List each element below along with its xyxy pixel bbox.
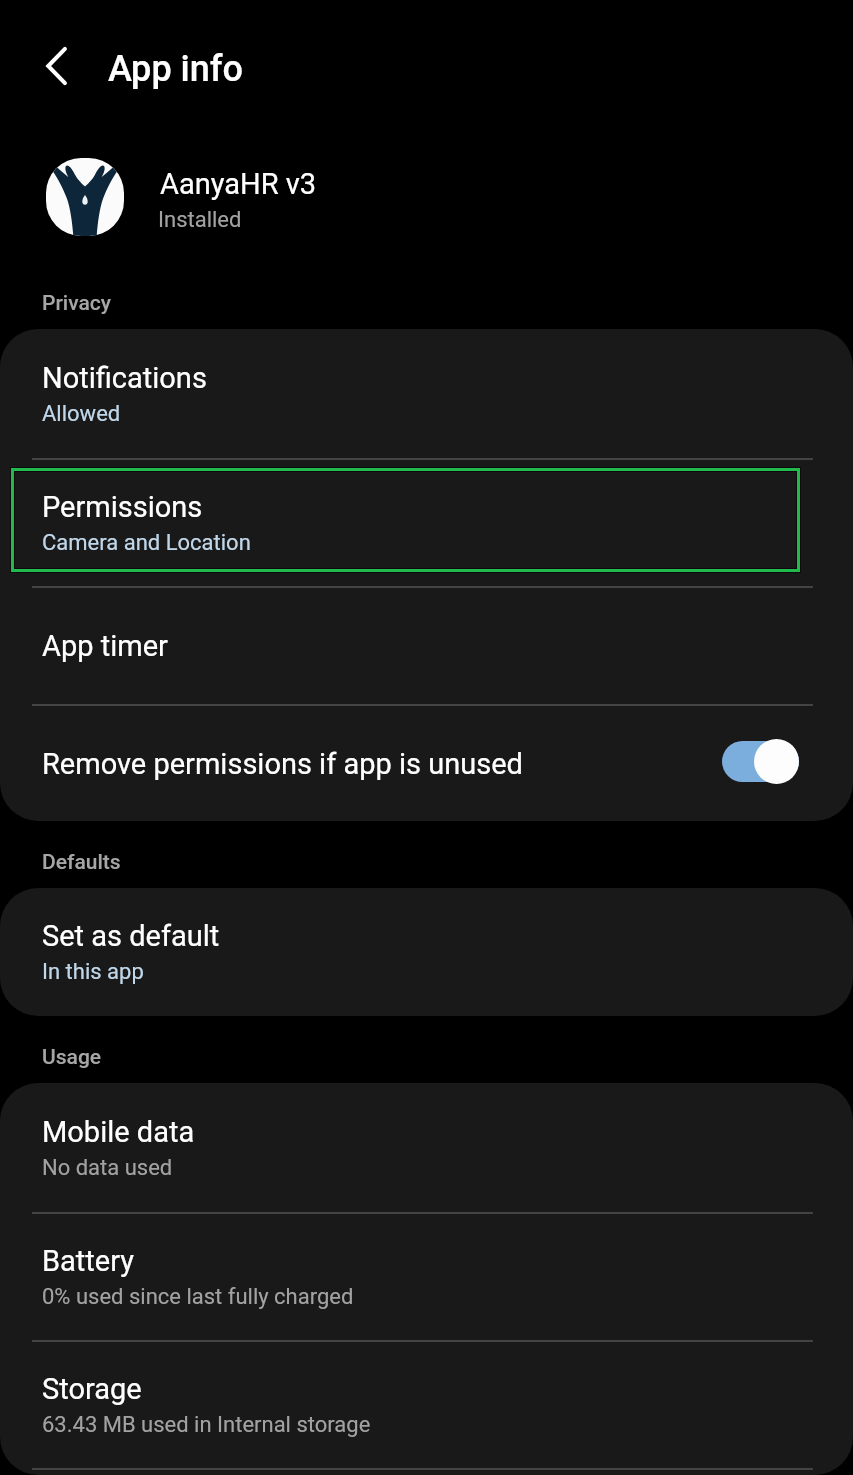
staticText: Mobile data bbox=[42, 1115, 195, 1149]
button[interactable]: Mobile data bbox=[0, 1083, 853, 1212]
button[interactable]: Set as default bbox=[0, 888, 853, 1016]
staticText: App timer bbox=[42, 629, 168, 663]
staticText: AanyaHR v3 bbox=[160, 167, 317, 201]
staticText: 0% used since last fully charged bbox=[42, 1284, 354, 1310]
staticText: Allowed bbox=[42, 401, 121, 427]
staticText: Storage bbox=[42, 1372, 142, 1406]
staticText: Privacy bbox=[42, 291, 112, 316]
button[interactable]: Back bbox=[26, 44, 70, 88]
staticText: Camera and Location bbox=[42, 530, 251, 556]
staticText: No data used bbox=[42, 1155, 173, 1181]
staticText: Usage bbox=[42, 1045, 102, 1070]
staticText: Notifications bbox=[42, 361, 207, 395]
button[interactable]: Notifications bbox=[0, 329, 853, 458]
staticText: Installed bbox=[158, 207, 242, 233]
button[interactable]: Remove permissions if app is unused bbox=[0, 706, 853, 821]
staticText: Remove permissions if app is unused bbox=[42, 747, 523, 781]
button[interactable]: Permissions bbox=[0, 460, 853, 586]
button[interactable]: AanyaHR v3 bbox=[0, 136, 853, 260]
button[interactable]: Remove permissions toggle bbox=[722, 738, 799, 784]
button[interactable]: App timer bbox=[0, 588, 853, 704]
staticText: App info bbox=[108, 48, 244, 90]
staticText: In this app bbox=[42, 959, 144, 985]
staticText: Battery bbox=[42, 1244, 134, 1278]
staticText: Defaults bbox=[42, 850, 121, 875]
button[interactable]: Battery bbox=[0, 1214, 853, 1340]
button[interactable]: Storage bbox=[0, 1342, 853, 1468]
staticText: Set as default bbox=[42, 919, 220, 953]
staticText: 63.43 MB used in Internal storage bbox=[42, 1412, 371, 1438]
staticText: Permissions bbox=[42, 490, 203, 524]
